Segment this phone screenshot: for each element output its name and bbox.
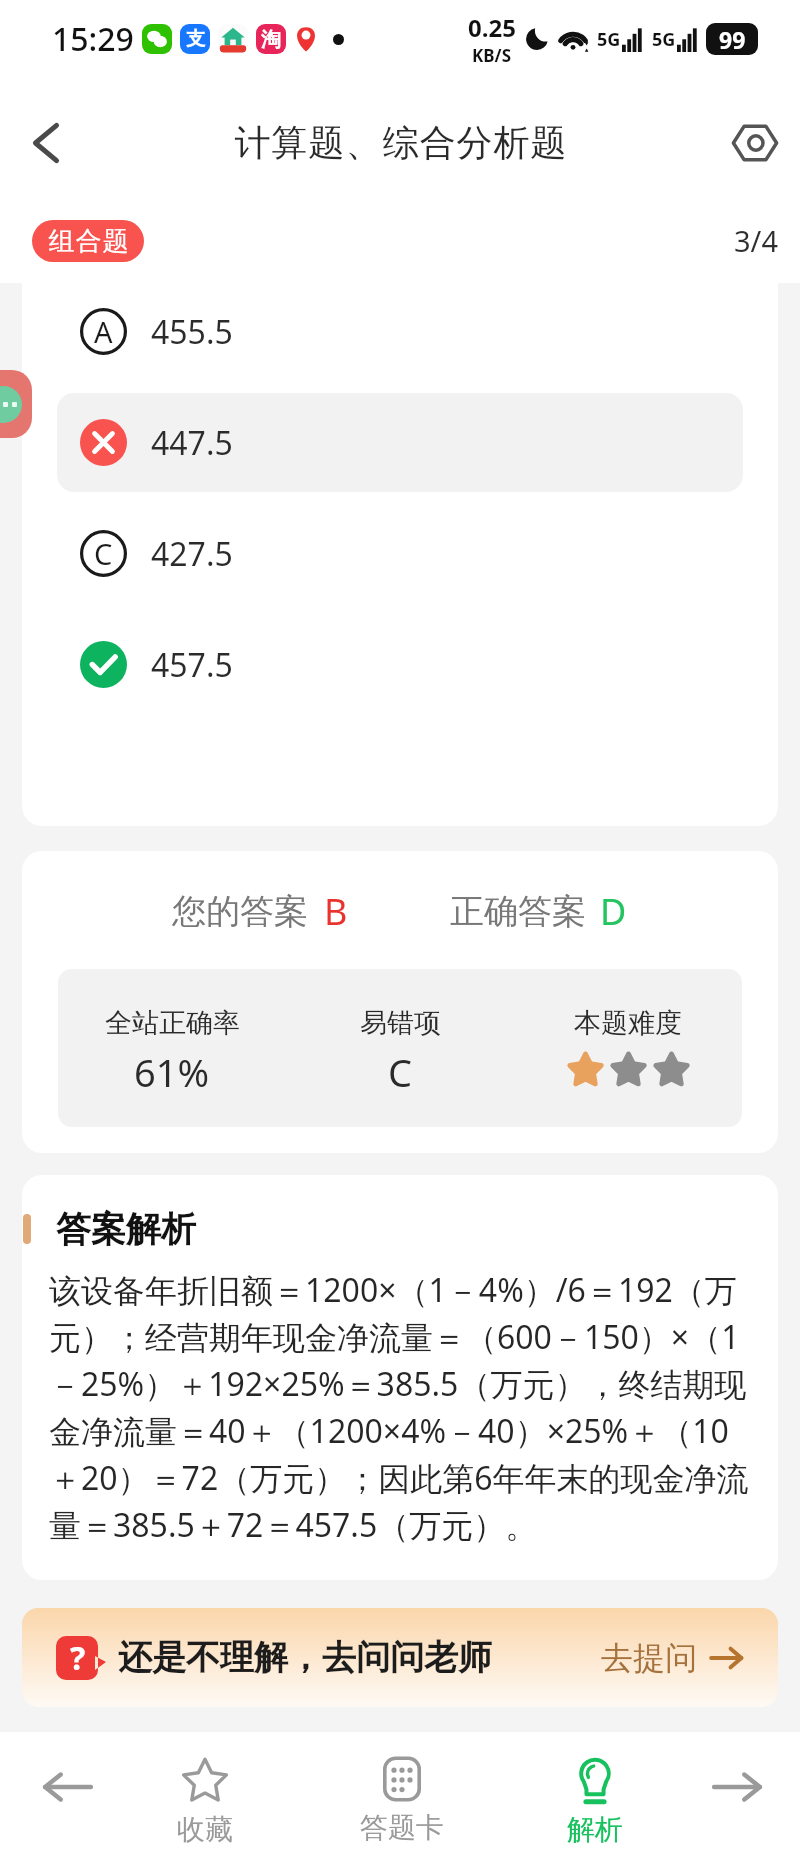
button[interactable]: Settings <box>719 107 791 179</box>
staticText: ? <box>70 1636 86 1680</box>
staticText: 427.5 <box>151 532 233 576</box>
button[interactable]: C <box>57 504 743 603</box>
staticText: 淘 <box>261 27 281 52</box>
button[interactable]: 组合题 <box>32 220 144 262</box>
staticText: 全站正确率 <box>105 1006 240 1040</box>
button[interactable]: Previous question <box>20 1732 116 1866</box>
button[interactable]: 收藏 <box>145 1732 265 1866</box>
staticText: 解析 <box>567 1812 623 1847</box>
staticText: 收藏 <box>177 1812 233 1847</box>
button[interactable]: 解析 <box>535 1732 655 1866</box>
button[interactable]: A <box>57 283 743 381</box>
staticText: 组合题 <box>48 225 129 258</box>
staticText: 455.5 <box>151 310 233 354</box>
staticText: 447.5 <box>151 421 233 465</box>
staticText: 本题难度 <box>574 1006 682 1040</box>
button[interactable]: Chat assistant <box>0 370 32 438</box>
button[interactable]: Back <box>10 107 82 179</box>
button[interactable]: 447.5 <box>57 393 743 492</box>
staticText: 答题卡 <box>360 1810 444 1845</box>
staticText: 5G <box>597 27 621 52</box>
staticText: 5G <box>652 27 676 52</box>
staticText: 还是不理解，去问问老师 <box>118 1636 492 1679</box>
staticText: 计算题、综合分析题 <box>234 120 567 165</box>
staticText: C <box>94 534 113 573</box>
staticText: B <box>324 887 348 936</box>
button[interactable]: Next question <box>689 1732 785 1866</box>
staticText: D <box>600 887 627 936</box>
staticText: 易错项 <box>360 1006 441 1040</box>
staticText: 15:29 <box>52 17 134 61</box>
staticText: 99 <box>719 24 746 55</box>
button[interactable]: 457.5 <box>57 615 743 714</box>
staticText: 457.5 <box>151 643 233 687</box>
staticText: 该设备年折旧额＝1200×（1－4%）/6＝192（万元）；经营期年现金净流量＝… <box>49 1268 751 1547</box>
staticText: C <box>388 1046 413 1092</box>
staticText: 您的答案 <box>172 890 308 933</box>
staticText: 去提问 <box>601 1638 697 1678</box>
button[interactable]: 答题卡 <box>342 1732 462 1866</box>
staticText: 答案解析 <box>56 1207 196 1251</box>
staticText: 0.25 <box>468 11 516 44</box>
button[interactable]: ? <box>22 1608 778 1707</box>
staticText: 正确答案 <box>450 890 586 933</box>
staticText: A <box>94 312 113 351</box>
staticText: KB/S <box>472 44 512 67</box>
staticText: 3/4 <box>734 221 778 260</box>
staticText: 支 <box>186 27 205 51</box>
staticText: 61% <box>134 1046 210 1092</box>
